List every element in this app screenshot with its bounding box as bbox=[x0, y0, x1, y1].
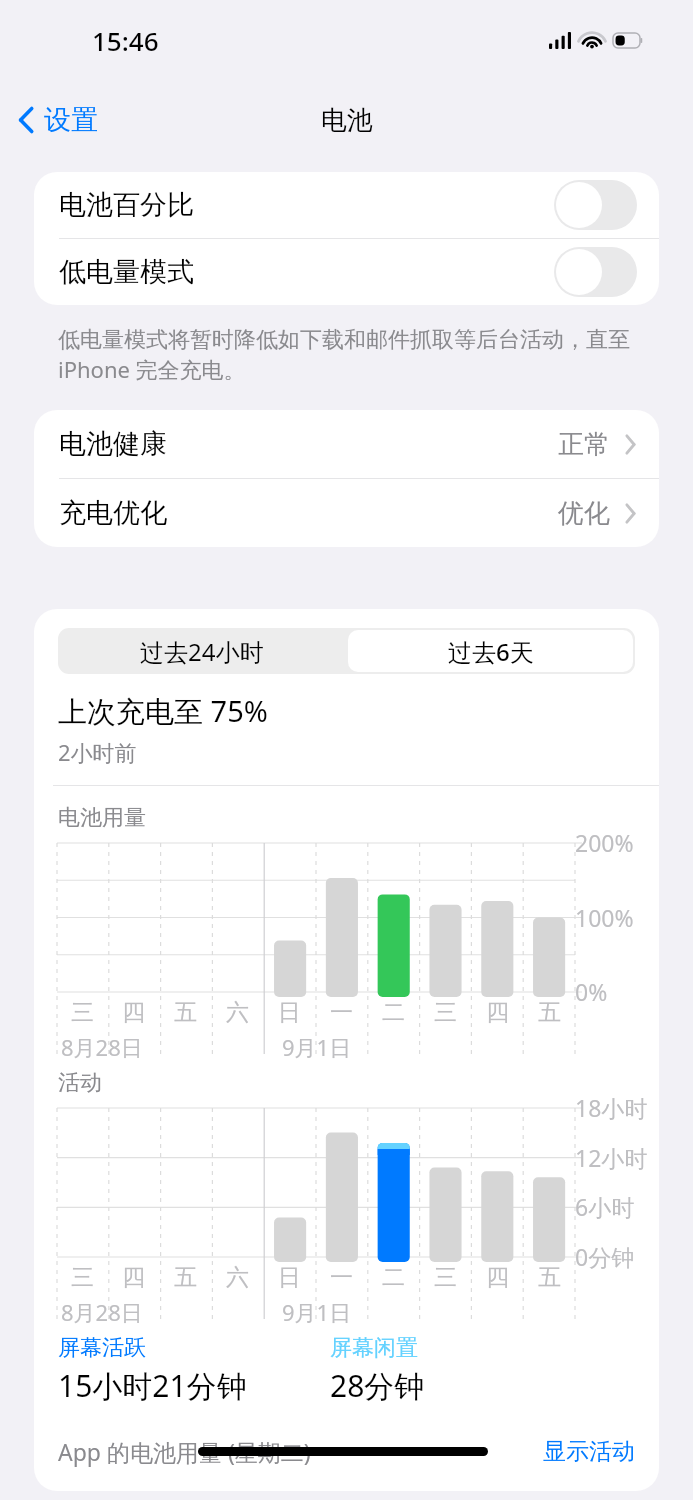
staticText: 电池百分比 bbox=[59, 188, 194, 222]
staticText: 6小时 bbox=[575, 1191, 635, 1222]
button[interactable]: 设置 bbox=[0, 95, 112, 145]
staticText: 四 bbox=[486, 1263, 509, 1292]
staticText: 日 bbox=[278, 1263, 301, 1292]
button[interactable]: 低电量模式 bbox=[34, 239, 659, 305]
button[interactable]: 低电量模式 bbox=[554, 247, 637, 297]
staticText: 五 bbox=[174, 1263, 197, 1292]
staticText: 低电量模式 bbox=[59, 255, 194, 289]
button[interactable]: 电池健康 bbox=[34, 410, 659, 478]
staticText: 优化 bbox=[558, 497, 610, 530]
staticText: 电池 bbox=[321, 104, 373, 137]
staticText: 0分钟 bbox=[575, 1241, 635, 1272]
staticText: 上次充电至 75% bbox=[58, 691, 268, 731]
staticText: 五 bbox=[538, 998, 561, 1027]
staticText: 一 bbox=[330, 998, 353, 1027]
button[interactable]: 电池百分比 bbox=[554, 180, 637, 230]
staticText: 四 bbox=[486, 998, 509, 1027]
staticText: 9月1日 bbox=[282, 1032, 352, 1062]
staticText: 8月28日 bbox=[61, 1297, 143, 1327]
staticText: 三 bbox=[434, 998, 457, 1027]
staticText: 电池健康 bbox=[59, 427, 167, 461]
button[interactable]: 充电优化 bbox=[34, 479, 659, 547]
staticText: 9月1日 bbox=[282, 1297, 352, 1327]
staticText: 三 bbox=[71, 1263, 94, 1292]
staticText: 二 bbox=[382, 1263, 405, 1292]
staticText: 28分钟 bbox=[330, 1365, 425, 1406]
staticText: 过去6天 bbox=[448, 635, 534, 668]
staticText: 六 bbox=[226, 1263, 249, 1292]
staticText: 日 bbox=[278, 998, 301, 1027]
staticText: 充电优化 bbox=[59, 496, 167, 530]
staticText: 电池用量 bbox=[58, 804, 146, 832]
staticText: 三 bbox=[71, 998, 94, 1027]
staticText: 正常 bbox=[558, 428, 610, 461]
staticText: 低电量模式将暂时降低如下载和邮件抓取等后台活动，直至 iPhone 完全充电。 bbox=[58, 323, 645, 384]
staticText: 五 bbox=[538, 1263, 561, 1292]
staticText: 过去24小时 bbox=[140, 635, 264, 668]
staticText: 15小时21分钟 bbox=[58, 1365, 247, 1406]
staticText: 五 bbox=[174, 998, 197, 1027]
button[interactable]: 电池百分比 bbox=[34, 172, 659, 238]
staticText: 100% bbox=[575, 902, 634, 933]
staticText: 四 bbox=[122, 998, 145, 1027]
staticText: App 的电池用量 (星期二) bbox=[58, 1436, 311, 1467]
staticText: 18小时 bbox=[575, 1092, 648, 1123]
staticText: 200% bbox=[575, 827, 634, 858]
staticText: 15:46 bbox=[92, 23, 159, 58]
button[interactable]: 过去6天 bbox=[348, 630, 633, 672]
staticText: 屏幕活跃 bbox=[58, 1334, 146, 1362]
staticText: 设置 bbox=[44, 103, 98, 137]
staticText: 2小时前 bbox=[58, 737, 137, 767]
staticText: 六 bbox=[226, 998, 249, 1027]
staticText: 12小时 bbox=[575, 1142, 648, 1173]
staticText: 0% bbox=[575, 976, 608, 1007]
staticText: 二 bbox=[382, 998, 405, 1027]
staticText: 三 bbox=[434, 1263, 457, 1292]
staticText: 屏幕闲置 bbox=[330, 1334, 418, 1362]
staticText: 8月28日 bbox=[61, 1032, 143, 1062]
button[interactable]: 过去24小时 bbox=[58, 628, 346, 674]
button[interactable]: 显示活动 bbox=[543, 1437, 635, 1466]
staticText: 一 bbox=[330, 1263, 353, 1292]
staticText: 四 bbox=[122, 1263, 145, 1292]
staticText: 活动 bbox=[58, 1069, 102, 1097]
